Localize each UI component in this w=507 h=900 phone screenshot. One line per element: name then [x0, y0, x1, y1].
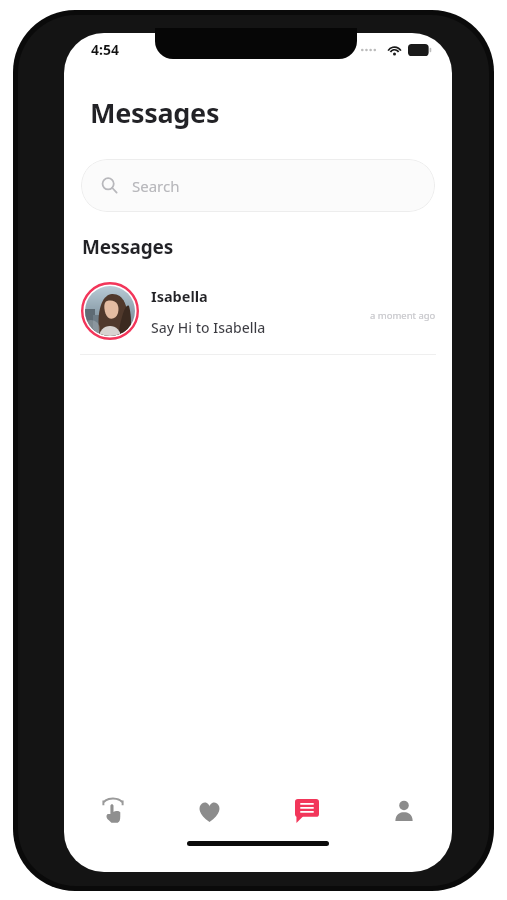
- button[interactable]: Likes: [161, 780, 258, 842]
- button[interactable]: Messages: [258, 780, 355, 842]
- staticText: Isabella: [151, 286, 208, 306]
- button[interactable]: Search: [81, 159, 435, 212]
- button[interactable]: Discover: [64, 780, 161, 842]
- button[interactable]: Isabella: [64, 282, 452, 355]
- staticText: Messages: [90, 94, 220, 131]
- staticText: Say Hi to Isabella: [151, 318, 266, 337]
- staticText: Search: [132, 176, 180, 196]
- staticText: Messages: [82, 234, 174, 260]
- staticText: 4:54: [91, 40, 119, 59]
- staticText: a moment ago: [370, 309, 436, 322]
- button[interactable]: Profile: [355, 780, 452, 842]
